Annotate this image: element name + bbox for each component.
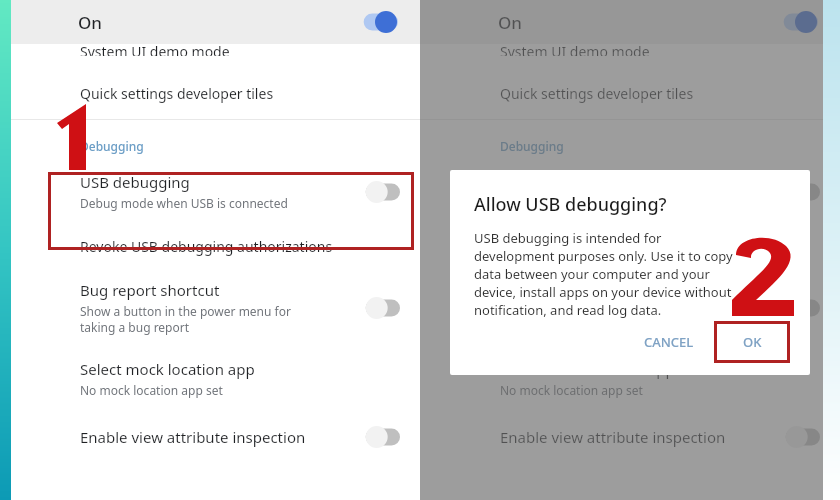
staticText: No mock location app set — [80, 382, 223, 398]
button[interactable]: CANCEL — [632, 325, 706, 359]
staticText: Quick settings developer tiles — [80, 84, 274, 103]
button[interactable]: USB debugging — [0, 168, 420, 219]
button[interactable]: Bug report shortcut — [0, 280, 420, 335]
staticText: Debug mode when USB is connected — [500, 195, 708, 211]
staticText: Debugging — [80, 138, 144, 154]
button[interactable]: Toggle — [776, 295, 820, 321]
staticText: Revoke USB debugging authorizations — [500, 237, 753, 256]
button[interactable]: Quick settings developer tiles — [0, 82, 420, 119]
button[interactable]: Toggle — [776, 179, 820, 205]
staticText: Revoke USB debugging authorizations — [80, 237, 333, 256]
staticText: USB debugging — [80, 172, 190, 192]
staticText: Quick settings developer tiles — [500, 84, 694, 103]
button[interactable]: Toggle — [354, 9, 398, 35]
button[interactable]: USB debugging — [420, 168, 840, 219]
button[interactable]: Select mock location app — [420, 359, 840, 398]
staticText: Show a button in the power menu for — [80, 303, 291, 319]
button[interactable]: On — [0, 0, 420, 44]
staticText: Bug report shortcut — [500, 280, 640, 300]
button[interactable]: Toggle — [356, 424, 400, 450]
staticText: System UI demo mode — [80, 42, 230, 56]
button[interactable]: Enable view attribute inspection — [0, 424, 420, 450]
staticText: No mock location app set — [500, 382, 643, 398]
staticText: OK — [743, 333, 762, 351]
button[interactable]: OK — [714, 321, 790, 363]
staticText: Select mock location app — [500, 359, 675, 379]
button[interactable]: Select mock location app — [0, 359, 420, 398]
staticText: Enable view attribute inspection — [500, 427, 726, 447]
staticText: On — [78, 11, 102, 34]
button[interactable]: Toggle — [776, 424, 820, 450]
staticText: Show a button in the power menu for — [500, 303, 711, 319]
button[interactable]: Toggle — [356, 295, 400, 321]
staticText: taking a bug report — [80, 319, 190, 335]
staticText: System UI demo mode — [500, 42, 650, 56]
button[interactable]: Bug report shortcut — [420, 280, 840, 335]
staticText: On — [498, 11, 522, 34]
staticText: Bug report shortcut — [80, 280, 220, 300]
button[interactable] — [48, 172, 414, 250]
staticText: Debug mode when USB is connected — [80, 195, 288, 211]
staticText: CANCEL — [644, 333, 694, 351]
staticText: Select mock location app — [80, 359, 255, 379]
button[interactable]: Revoke USB debugging authorizations — [420, 237, 840, 256]
button[interactable]: Enable view attribute inspection — [420, 424, 840, 450]
button[interactable]: Revoke USB debugging authorizations — [0, 237, 420, 256]
button[interactable]: Toggle — [356, 179, 400, 205]
staticText: USB debugging is intended for developmen… — [474, 229, 733, 319]
button[interactable]: On — [420, 0, 840, 44]
button[interactable]: Toggle — [774, 9, 818, 35]
staticText: Allow USB debugging? — [474, 192, 667, 217]
staticText: Debugging — [500, 138, 564, 154]
button[interactable]: Quick settings developer tiles — [420, 82, 840, 119]
staticText: Enable view attribute inspection — [80, 427, 306, 447]
